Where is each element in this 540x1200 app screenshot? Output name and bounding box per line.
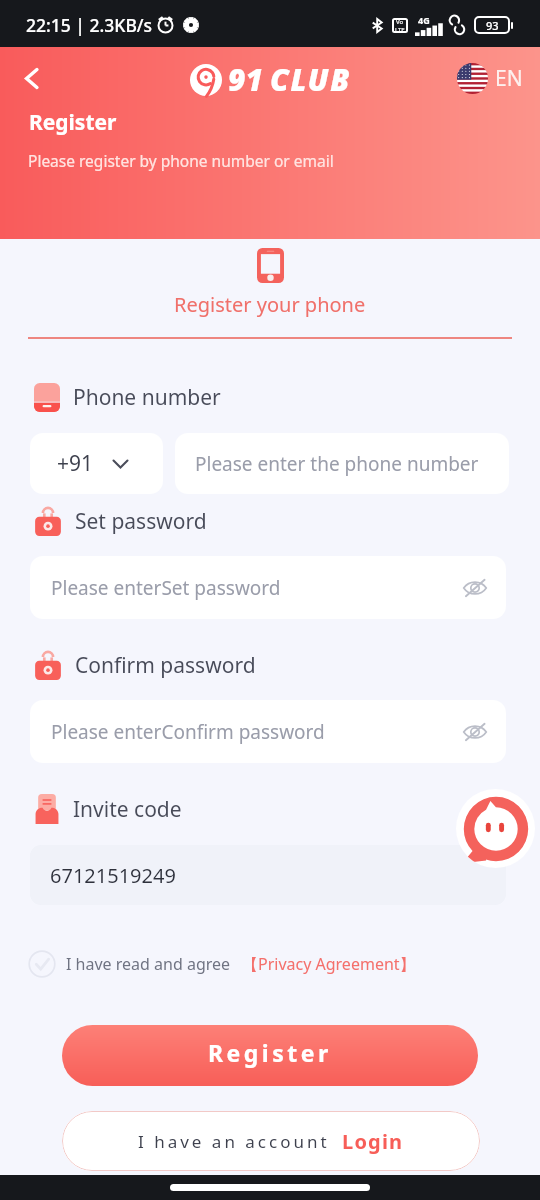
staticText: EN (495, 64, 523, 93)
staticText: Register your phone (174, 291, 366, 318)
staticText: Login (342, 1128, 404, 1155)
button[interactable]: Change language (453, 59, 527, 98)
staticText: 91 (228, 59, 263, 100)
staticText: Register (29, 108, 117, 137)
staticText: LTE (395, 26, 405, 33)
staticText: I have an account (138, 1130, 330, 1153)
staticText: Set password (75, 507, 207, 536)
button[interactable]: Back (11, 58, 51, 98)
staticText: 【Privacy Agreement】 (242, 953, 416, 975)
staticText: Please register by phone number or email (28, 150, 334, 171)
button[interactable]: Please enter the phone number (175, 433, 509, 494)
staticText: 22:15 | 2.3KB/s (26, 13, 153, 37)
staticText: Confirm password (75, 651, 256, 680)
staticText: Vo (396, 18, 404, 26)
staticText: I have read and agree (66, 953, 231, 975)
button[interactable]: Customer service chat (456, 789, 535, 868)
button[interactable]: I have an account (62, 1111, 480, 1171)
staticText: 67121519249 (50, 862, 176, 889)
button[interactable]: +91 (30, 433, 163, 494)
button[interactable]: Register (62, 1025, 478, 1086)
button[interactable]: Please enterSet password (30, 556, 506, 619)
button[interactable]: Please enterConfirm password (30, 700, 506, 763)
staticText: Please enter the phone number (195, 451, 479, 477)
staticText: Phone number (73, 383, 221, 412)
button[interactable]: Show password (457, 570, 493, 606)
staticText: Register (208, 1037, 332, 1068)
staticText: Please enterSet password (51, 575, 281, 601)
staticText: 93 (486, 18, 499, 33)
staticText: CLUB (270, 59, 351, 100)
button[interactable]: I have read and agree (28, 950, 424, 978)
staticText: Please enterConfirm password (51, 719, 325, 745)
staticText: +91 (57, 449, 94, 478)
button[interactable]: 67121519249 (30, 845, 506, 905)
button[interactable]: Register your phone (144, 248, 396, 318)
staticText: Invite code (73, 795, 182, 824)
staticText: 4G (418, 14, 430, 26)
button[interactable]: Show password (457, 714, 493, 750)
